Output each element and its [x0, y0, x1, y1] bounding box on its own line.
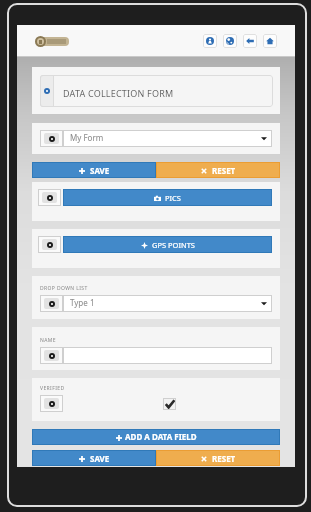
staticText: NAME	[40, 337, 56, 344]
button[interactable]: RESET	[156, 450, 280, 466]
button[interactable]: Field options	[40, 130, 63, 147]
staticText: ADD A DATA FIELD	[125, 431, 197, 442]
button[interactable]: Field options	[40, 395, 63, 412]
button[interactable]: SAVE	[32, 450, 156, 466]
button[interactable]: Field options	[40, 347, 63, 364]
button[interactable]: Field options	[40, 295, 63, 312]
button[interactable]: GPS POINTS	[63, 236, 272, 253]
button[interactable]: Type 1	[63, 295, 272, 312]
button[interactable]: Verified checkbox	[163, 398, 176, 410]
staticText: SAVE	[90, 165, 110, 176]
button[interactable]: Form options	[40, 75, 54, 107]
staticText: DROP DOWN LIST	[40, 285, 88, 292]
staticText: SAVE	[90, 453, 110, 464]
button[interactable]: Field options	[38, 236, 61, 253]
button[interactable]: SAVE	[32, 162, 156, 178]
staticText: GPS POINTS	[152, 240, 195, 250]
staticText: PICS	[165, 193, 181, 203]
button[interactable]: Home	[263, 34, 277, 48]
button[interactable]	[35, 35, 69, 47]
button[interactable]: Field options	[38, 189, 61, 206]
staticText: RESET	[212, 165, 236, 176]
button[interactable]: Name input	[63, 347, 272, 364]
staticText: DATA COLLECTION FORM	[63, 87, 174, 99]
button[interactable]: PICS	[63, 189, 272, 206]
button[interactable]: Back	[243, 34, 257, 48]
button[interactable]: My Form	[63, 130, 272, 147]
button[interactable]: ADD A DATA FIELD	[32, 429, 280, 445]
staticText: RESET	[212, 453, 236, 464]
staticText: VERIFIED	[40, 385, 65, 392]
button[interactable]: Language	[223, 34, 237, 48]
button[interactable]: RESET	[156, 162, 280, 178]
staticText: My Form	[70, 132, 104, 143]
staticText: Type 1	[70, 297, 95, 308]
button[interactable]: Account	[203, 34, 217, 48]
